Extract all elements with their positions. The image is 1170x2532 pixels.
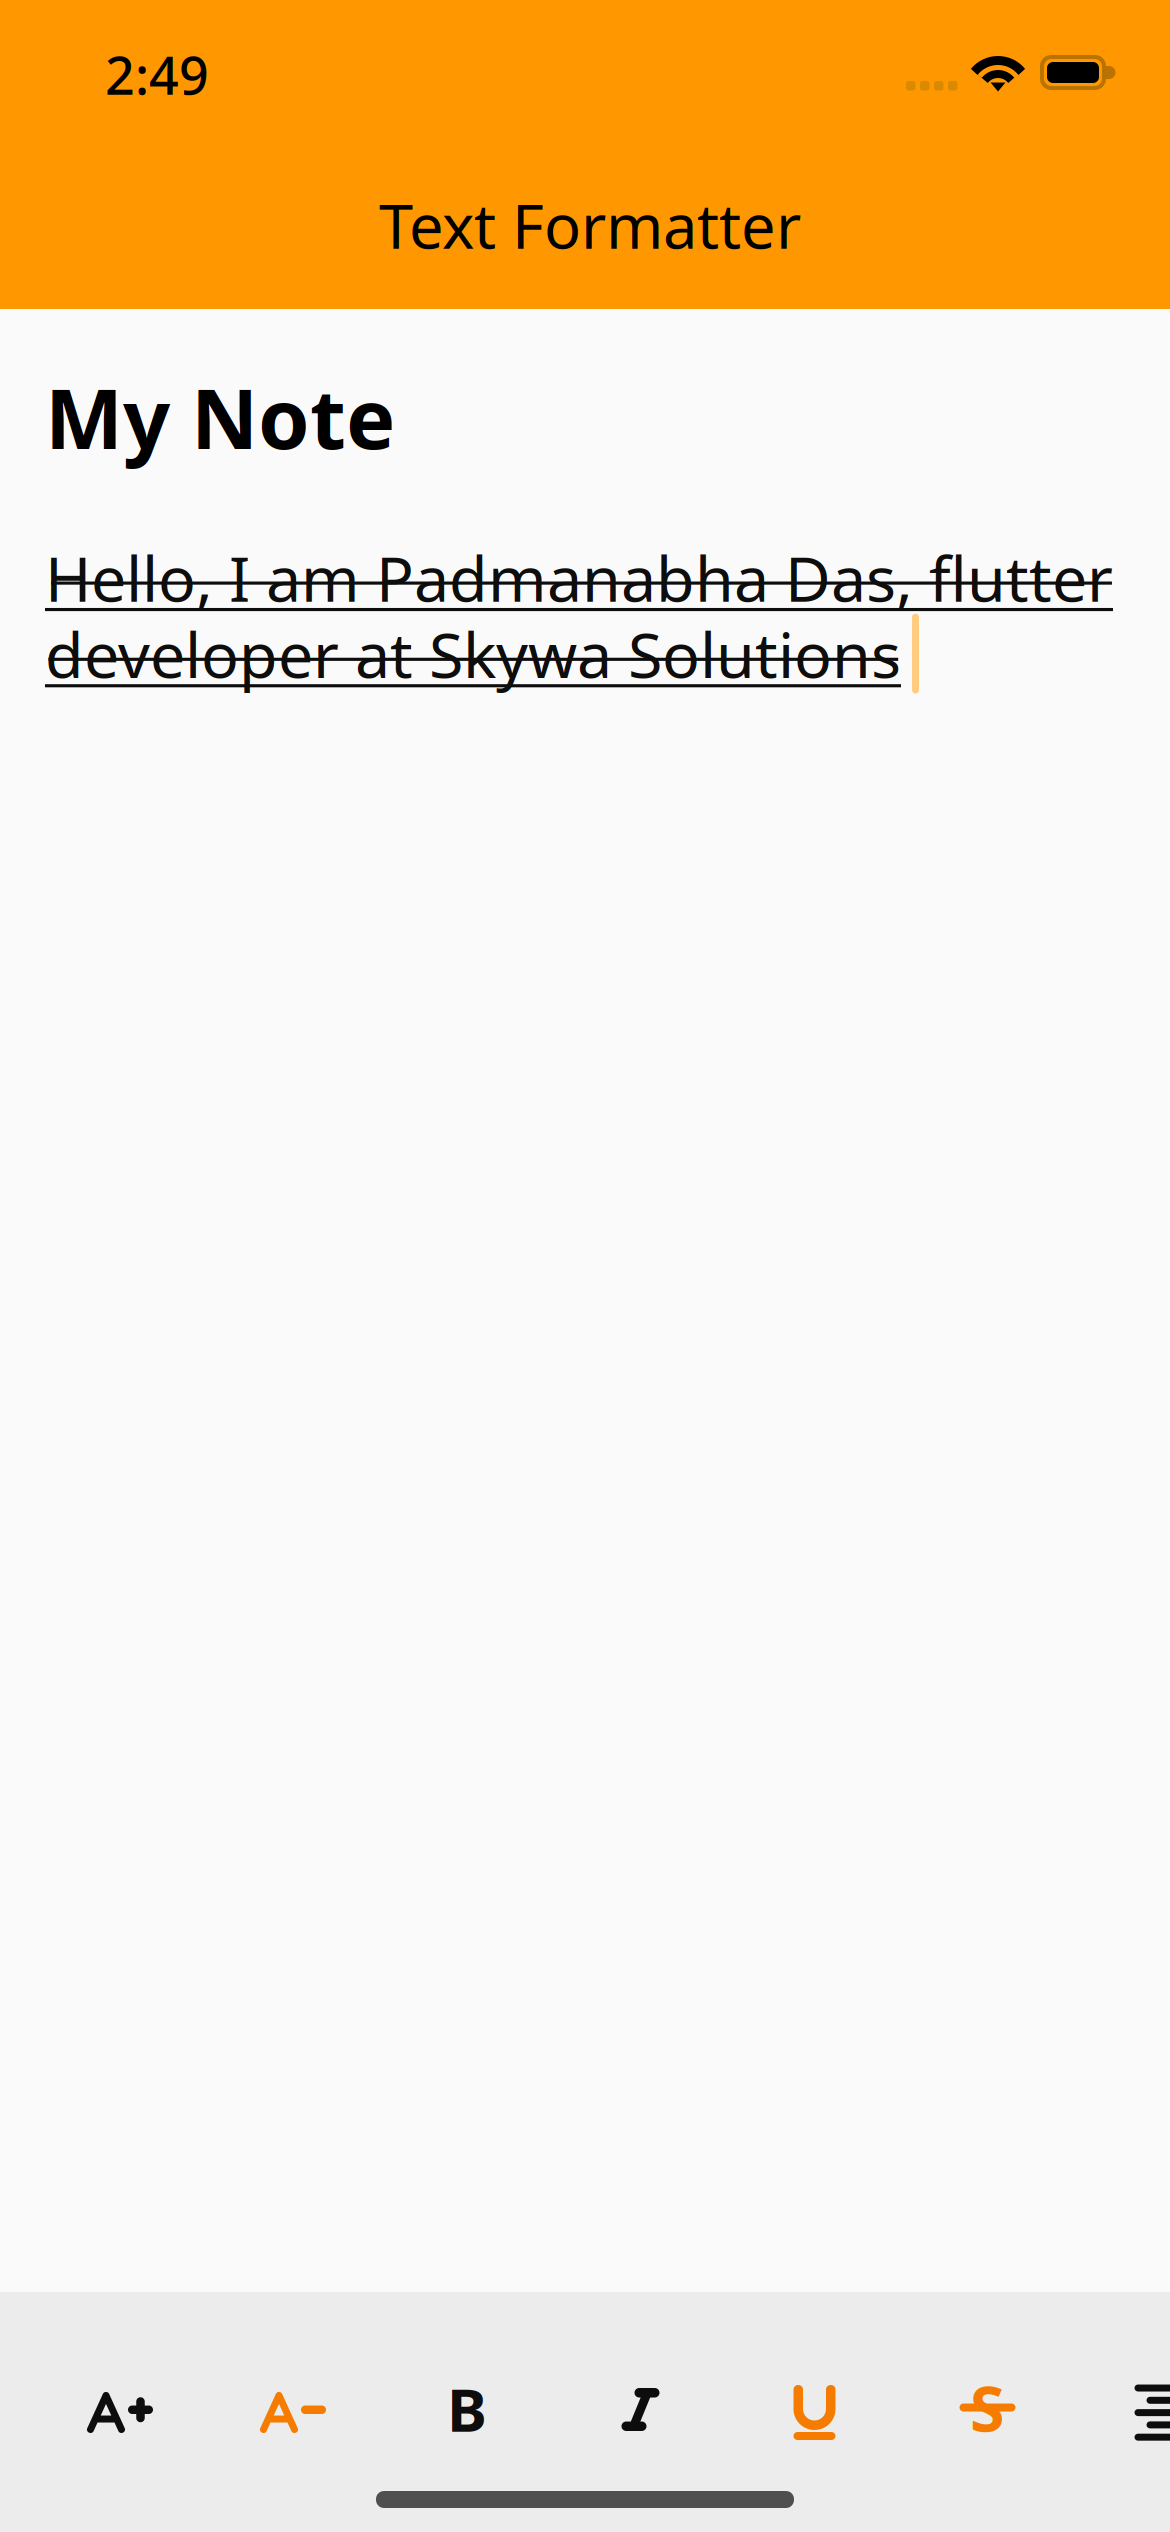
button[interactable]: Decrease font size [209, 2335, 382, 2490]
button[interactable]: Bold [382, 2335, 555, 2490]
button[interactable]: Strikethrough [901, 2335, 1074, 2490]
button[interactable]: Underline [728, 2335, 901, 2490]
staticText: 2:49 [105, 40, 209, 109]
staticText: developer at Skywa Solutions [45, 612, 901, 695]
staticText: My Note [45, 362, 395, 472]
staticText: Text Formatter [379, 184, 801, 266]
staticText: Hello, I am Padmanabha Das, flutter [45, 536, 1113, 619]
button[interactable]: Text alignment [1074, 2335, 1170, 2490]
button[interactable]: Increase font size [36, 2335, 209, 2490]
button[interactable]: Italic [555, 2335, 728, 2490]
staticText: S [970, 2366, 1005, 2449]
staticText: B [447, 2369, 487, 2448]
